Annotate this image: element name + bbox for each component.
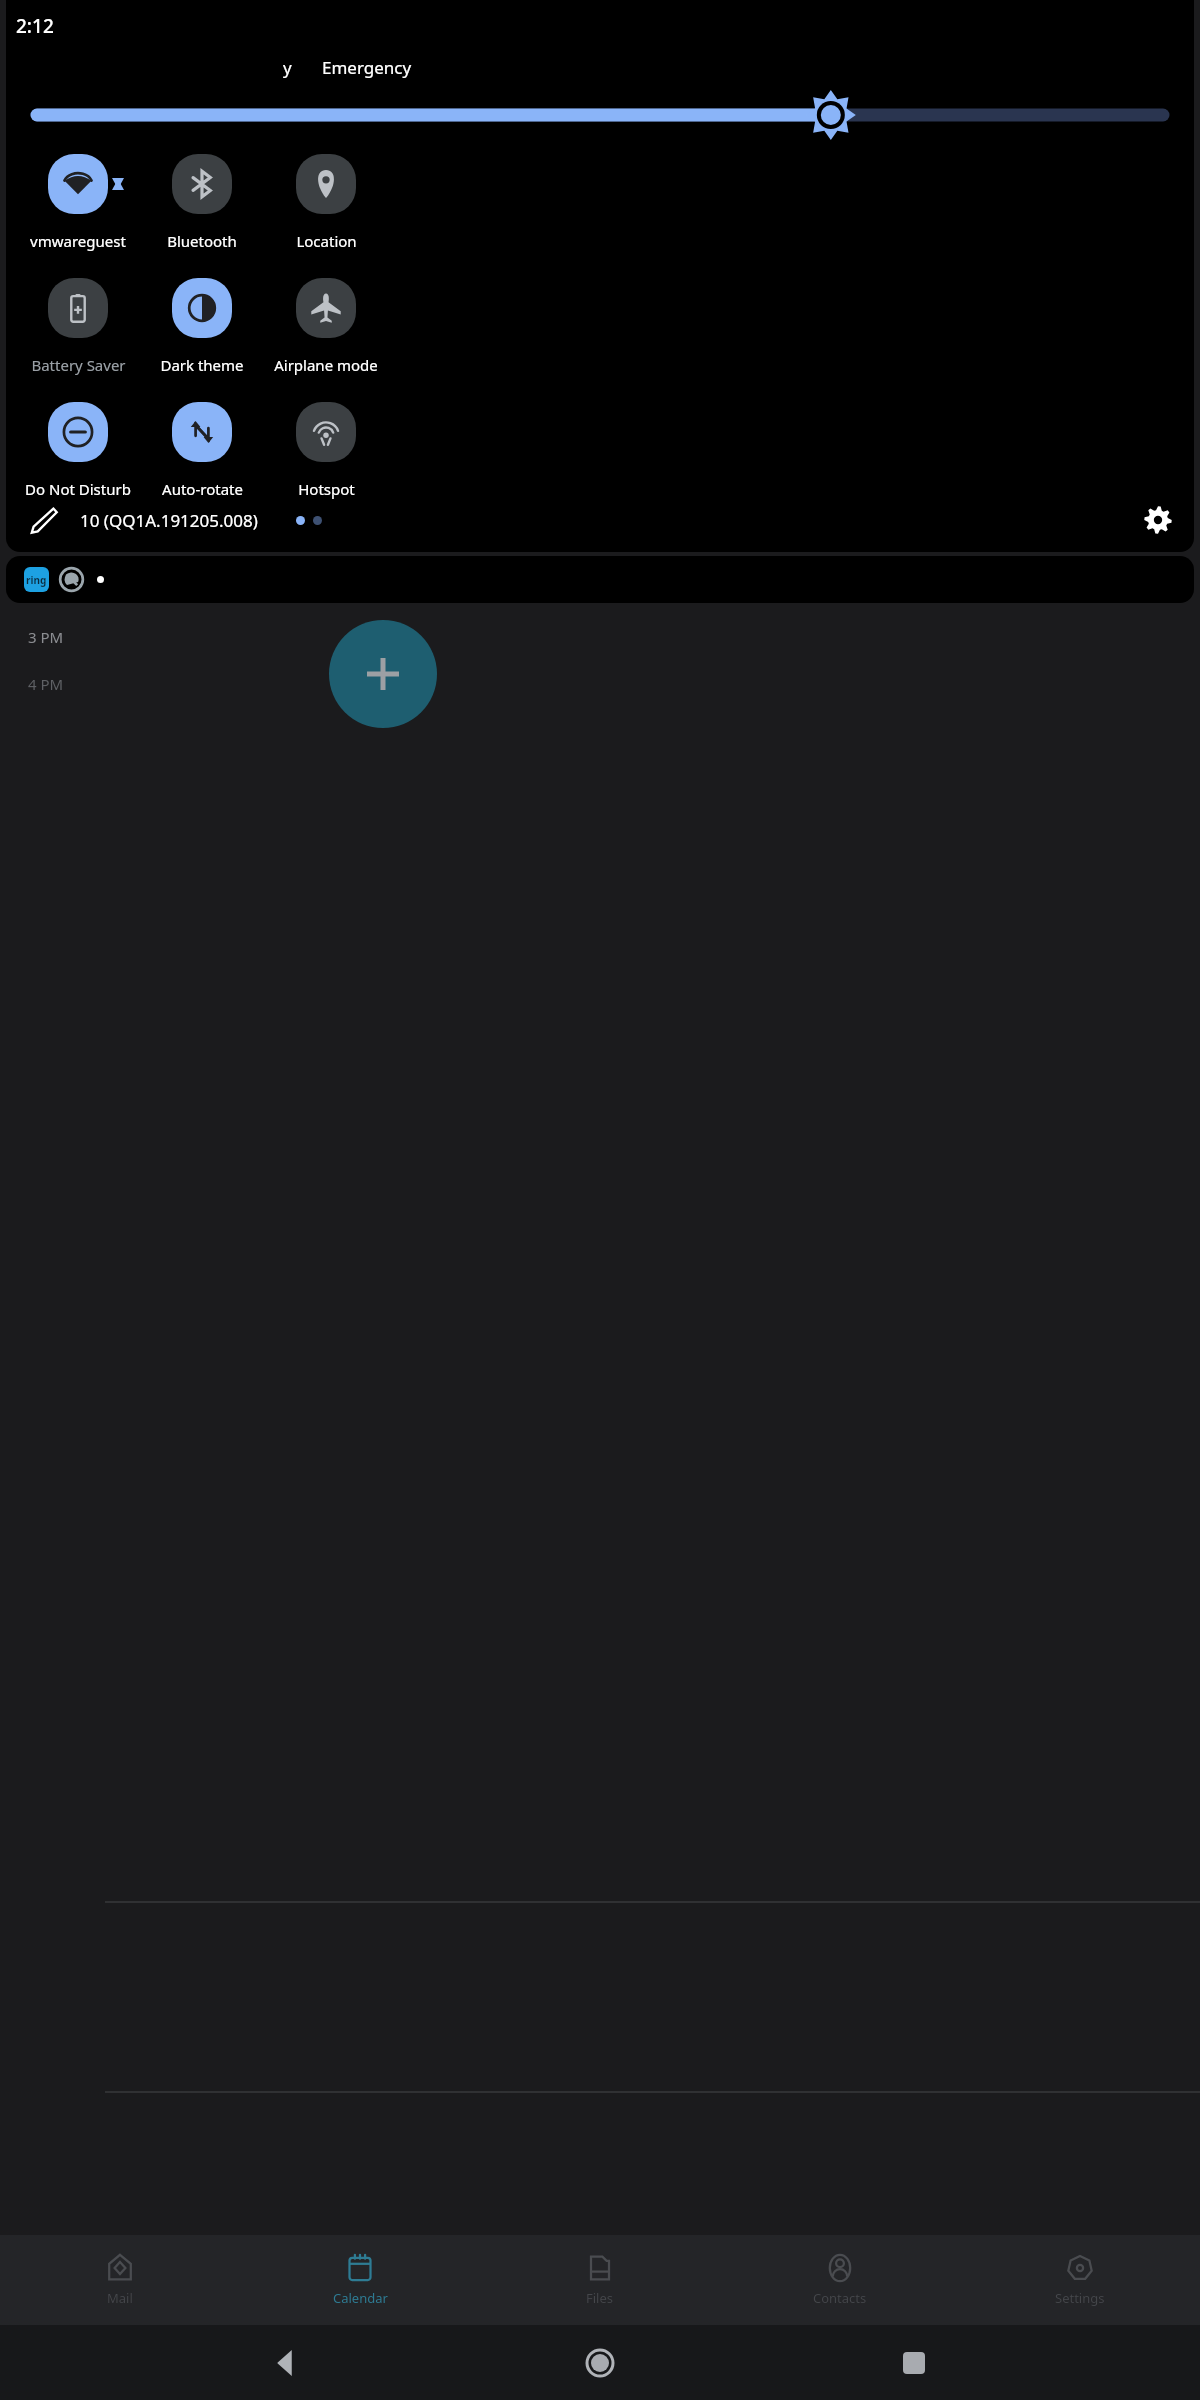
staticText: Battery Saver	[31, 355, 126, 375]
staticText: 2 PM	[28, 578, 64, 598]
button[interactable]: Emergency	[318, 52, 416, 83]
staticText: Auto-rotate	[162, 479, 243, 499]
button[interactable]: Settings	[1134, 496, 1182, 544]
staticText: Contacts	[813, 2289, 867, 2307]
staticText: Emergency	[322, 56, 412, 79]
staticText: vmwareguest	[30, 231, 126, 251]
button[interactable]: Mail	[0, 2235, 240, 2325]
staticText: 10 (QQ1A.191205.008)	[80, 509, 258, 532]
button[interactable]: Edit tiles	[20, 496, 68, 544]
staticText: Location	[296, 231, 357, 251]
button[interactable]: Back	[258, 2335, 314, 2391]
button[interactable]: Brightness	[37, 95, 1163, 135]
button[interactable]: Files	[480, 2235, 720, 2325]
staticText: Mail	[107, 2289, 133, 2307]
staticText: y	[283, 56, 292, 79]
staticText: 3 PM	[28, 627, 64, 647]
staticText: 4 PM	[28, 674, 64, 694]
staticText: ring	[26, 573, 47, 587]
staticText: Do Not Disturb	[25, 479, 131, 499]
button[interactable]: Battery Saver	[16, 277, 140, 375]
button[interactable]: Contacts	[720, 2235, 960, 2325]
staticText: Bluetooth	[167, 231, 237, 251]
staticText: Airplane mode	[274, 355, 378, 375]
staticText: Dark theme	[160, 355, 244, 375]
button[interactable]: Hotspot	[264, 401, 388, 499]
button[interactable]: Home	[572, 2335, 628, 2391]
button[interactable]: Calendar	[240, 2235, 480, 2325]
button[interactable]: Location	[264, 153, 388, 251]
button[interactable]: Bluetooth	[140, 153, 264, 251]
button[interactable]: Settings	[960, 2235, 1200, 2325]
staticText: 2:12	[16, 13, 54, 39]
staticText: Calendar	[333, 2289, 388, 2307]
button[interactable]: Auto-rotate	[140, 401, 264, 499]
button[interactable]: Do Not Disturb	[16, 401, 140, 499]
button[interactable]: Recents	[886, 2335, 942, 2391]
button[interactable]: vmwareguest	[16, 153, 140, 251]
staticText: Files	[586, 2289, 614, 2307]
staticText: Settings	[1055, 2289, 1105, 2307]
button[interactable]: Dark theme	[140, 277, 264, 375]
button[interactable]: Create event	[329, 620, 437, 728]
button[interactable]: Airplane mode	[264, 277, 388, 375]
button[interactable]: ring	[6, 556, 1194, 603]
staticText: Hotspot	[298, 479, 355, 499]
